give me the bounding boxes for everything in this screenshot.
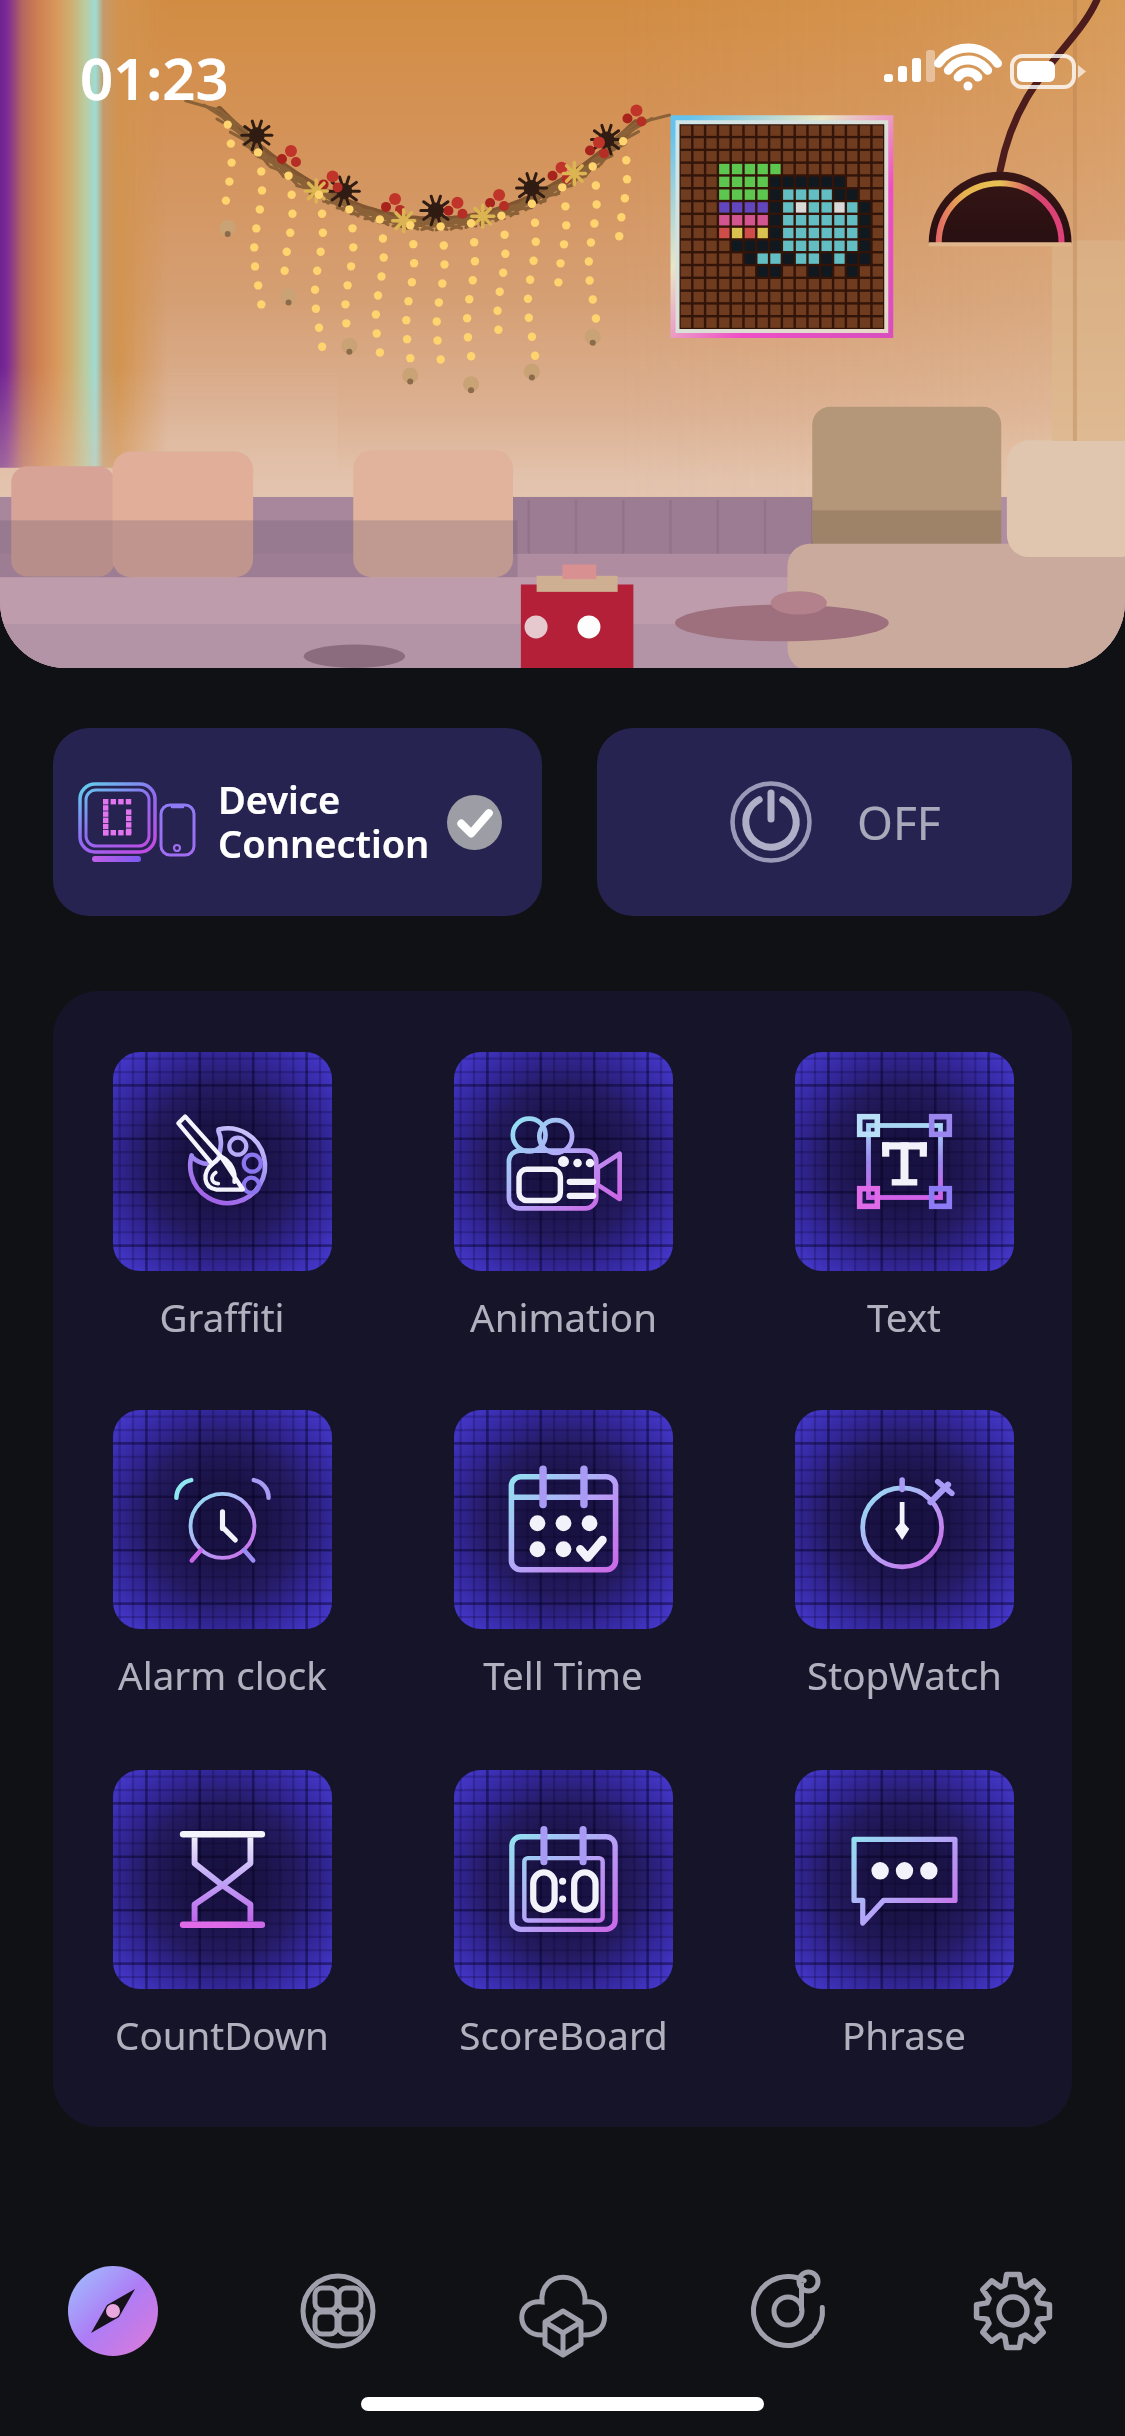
staticText: StopWatch — [807, 1649, 1002, 1701]
button[interactable]: Phrase — [744, 1770, 1064, 2061]
staticText: OFF — [857, 791, 941, 854]
staticText: Animation — [470, 1291, 657, 1343]
button[interactable]: Device Connection — [53, 728, 542, 916]
staticText: Graffiti — [159, 1291, 285, 1343]
staticText: 01:23 — [80, 38, 229, 117]
button[interactable]: Tell Time — [403, 1410, 723, 1701]
button[interactable]: Settings — [900, 2211, 1125, 2411]
button[interactable]: Graffiti — [62, 1052, 382, 1343]
staticText: Phrase — [842, 2009, 966, 2061]
button[interactable]: Alarm clock — [62, 1410, 382, 1701]
staticText: Device Connection — [218, 773, 430, 869]
button[interactable]: Home — [0, 2211, 225, 2411]
staticText: Tell Time — [483, 1649, 643, 1701]
button[interactable]: Animation — [403, 1052, 723, 1343]
staticText: CountDown — [115, 2009, 329, 2061]
button[interactable]: CountDown — [62, 1770, 382, 2061]
button[interactable]: Apps — [225, 2211, 450, 2411]
button[interactable]: Text — [744, 1052, 1064, 1343]
staticText: ScoreBoard — [459, 2009, 668, 2061]
button[interactable]: Discover — [675, 2211, 900, 2411]
button[interactable]: StopWatch — [744, 1410, 1064, 1701]
button[interactable]: ScoreBoard — [403, 1770, 723, 2061]
button[interactable]: Cloud — [450, 2211, 675, 2411]
button[interactable]: OFF — [597, 728, 1072, 916]
staticText: Alarm clock — [118, 1649, 327, 1701]
staticText: Text — [867, 1291, 941, 1343]
